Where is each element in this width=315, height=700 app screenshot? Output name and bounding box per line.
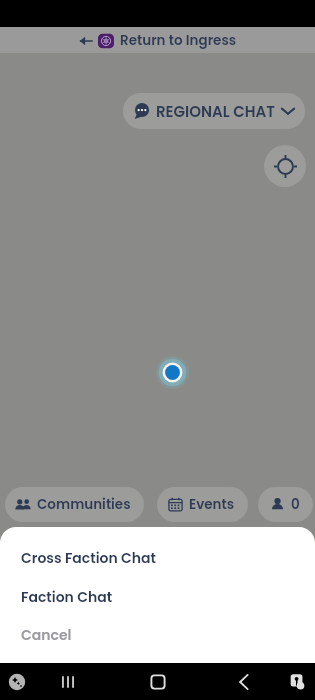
button[interactable]: Cancel <box>0 622 315 648</box>
button[interactable]: Communities <box>5 487 144 522</box>
button[interactable]: Assistant <box>7 672 27 692</box>
button[interactable]: My location <box>264 145 306 187</box>
staticText: Events <box>189 495 235 514</box>
staticText: Faction Chat <box>21 587 113 607</box>
button[interactable]: Faction Chat <box>0 584 315 610</box>
button[interactable]: Events <box>157 487 248 522</box>
other: Back <box>79 34 93 48</box>
button[interactable]: Recent apps <box>57 671 79 693</box>
staticText: Return to Ingress <box>120 31 237 50</box>
button[interactable]: Back <box>79 31 237 50</box>
staticText: 0 <box>291 495 300 514</box>
staticText: Cancel <box>21 625 72 645</box>
button[interactable]: Home <box>147 671 169 693</box>
button[interactable]: 0 <box>258 487 313 522</box>
button[interactable]: Cross Faction Chat <box>0 545 315 571</box>
button[interactable]: REGIONAL CHAT <box>123 93 305 129</box>
button[interactable]: Touch mode <box>288 672 307 691</box>
staticText: Cross Faction Chat <box>21 548 157 568</box>
staticText: REGIONAL CHAT <box>156 101 275 122</box>
button[interactable]: Back <box>234 671 256 693</box>
staticText: Communities <box>37 495 131 514</box>
